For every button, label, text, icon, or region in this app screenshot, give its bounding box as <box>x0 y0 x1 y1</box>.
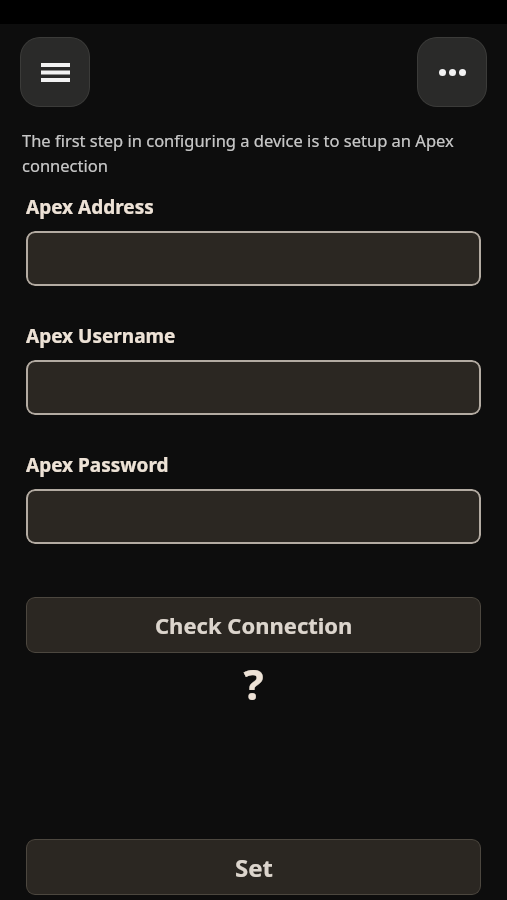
button[interactable] <box>26 360 481 415</box>
button[interactable]: More options <box>417 37 487 107</box>
button[interactable]: Set <box>26 839 481 895</box>
staticText: ? <box>0 655 507 712</box>
button[interactable]: Menu <box>20 37 90 107</box>
staticText: Set <box>235 851 273 884</box>
button[interactable] <box>26 231 481 286</box>
staticText: Apex Password <box>26 452 169 478</box>
button[interactable]: Check Connection <box>26 597 481 653</box>
staticText: Apex Username <box>26 323 176 349</box>
staticText: Check Connection <box>155 610 353 640</box>
staticText: Apex Address <box>26 194 154 220</box>
button[interactable] <box>26 489 481 544</box>
staticText: The first step in configuring a device i… <box>22 129 485 177</box>
